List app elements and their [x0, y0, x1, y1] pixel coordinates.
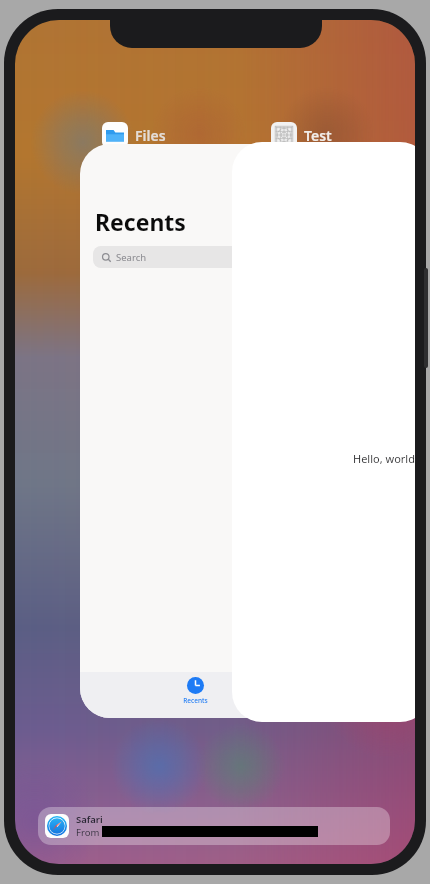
- staticText: Hello, world!: [353, 451, 415, 466]
- button[interactable]: Files: [100, 120, 168, 150]
- button[interactable]: Test: [269, 120, 334, 150]
- button[interactable]: Search: [93, 246, 297, 268]
- button[interactable]: Hello, world!: [232, 142, 415, 722]
- staticText: From: [76, 826, 102, 839]
- staticText: Search: [116, 251, 147, 264]
- staticText: Test: [304, 126, 332, 145]
- button[interactable]: Recents: [80, 144, 310, 718]
- staticText: Safari: [76, 813, 103, 826]
- button[interactable]: Safari: [38, 807, 390, 845]
- staticText: Recents: [183, 696, 208, 705]
- staticText: Files: [135, 126, 166, 145]
- button[interactable]: Recents: [183, 677, 208, 705]
- staticText: Recents: [95, 206, 186, 237]
